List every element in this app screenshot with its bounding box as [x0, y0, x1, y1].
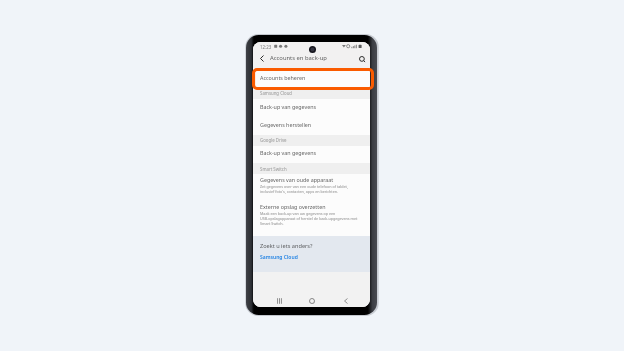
button[interactable]: Back-up van gegevens	[253, 146, 370, 163]
button[interactable]: Back-up van gegevens	[253, 99, 370, 117]
button[interactable]: Zoekt u iets anders?	[253, 236, 370, 272]
staticText: Samsung Cloud	[260, 254, 298, 261]
button[interactable]: Externe opslag overzetten	[253, 201, 370, 236]
button[interactable]: Home	[306, 295, 318, 307]
staticText: Zet gegevens over van een oude telefoon …	[260, 184, 348, 194]
staticText: Maak een back-up van uw gegevens op een …	[260, 211, 358, 226]
staticText: Zoekt u iets anders?	[260, 242, 313, 250]
button[interactable]: Recent apps	[273, 295, 285, 307]
button[interactable]: Gegevens herstellen	[253, 117, 370, 135]
staticText: Gegevens herstellen	[260, 121, 312, 128]
staticText: Accounts en back-up	[270, 54, 327, 62]
button[interactable]: Accounts beheren	[253, 68, 370, 90]
button[interactable]: Back	[340, 295, 352, 307]
button[interactable]: Back	[257, 53, 267, 63]
staticText: Google Drive	[260, 137, 287, 143]
staticText: Externe opslag overzetten	[260, 203, 326, 210]
staticText: Smart Switch	[260, 166, 287, 172]
staticText: Samsung Cloud	[260, 90, 292, 96]
staticText: Back-up van gegevens	[260, 149, 317, 156]
button[interactable]: Gegevens van oude apparaat	[253, 174, 370, 201]
staticText: Gegevens van oude apparaat	[260, 176, 334, 183]
staticText: 12:23	[260, 44, 272, 50]
staticText: Back-up van gegevens	[260, 103, 317, 110]
staticText: Accounts beheren	[260, 74, 306, 81]
button[interactable]: Search	[357, 53, 368, 64]
